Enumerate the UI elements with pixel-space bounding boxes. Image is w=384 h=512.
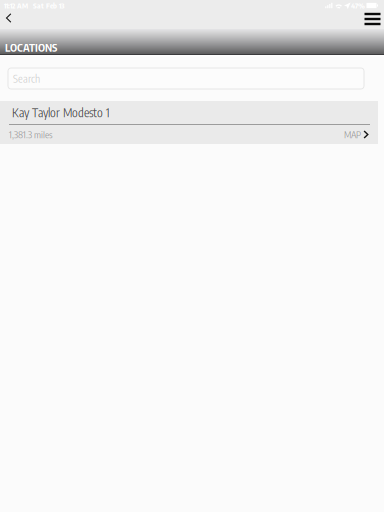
staticText: MAP bbox=[344, 129, 361, 140]
staticText: 47% bbox=[351, 1, 365, 10]
button[interactable]: Menu bbox=[352, 11, 384, 29]
button[interactable]: Kay Taylor Modesto 1 bbox=[0, 101, 384, 144]
staticText: LOCATIONS bbox=[5, 41, 57, 54]
button[interactable]: Back bbox=[0, 11, 23, 29]
staticText: Search bbox=[13, 72, 40, 85]
staticText: Sat Feb 13 bbox=[33, 1, 64, 10]
staticText: 11:12 AM bbox=[4, 1, 28, 10]
staticText: 1,381.3 miles bbox=[9, 129, 53, 140]
staticText: Kay Taylor Modesto 1 bbox=[12, 105, 110, 120]
